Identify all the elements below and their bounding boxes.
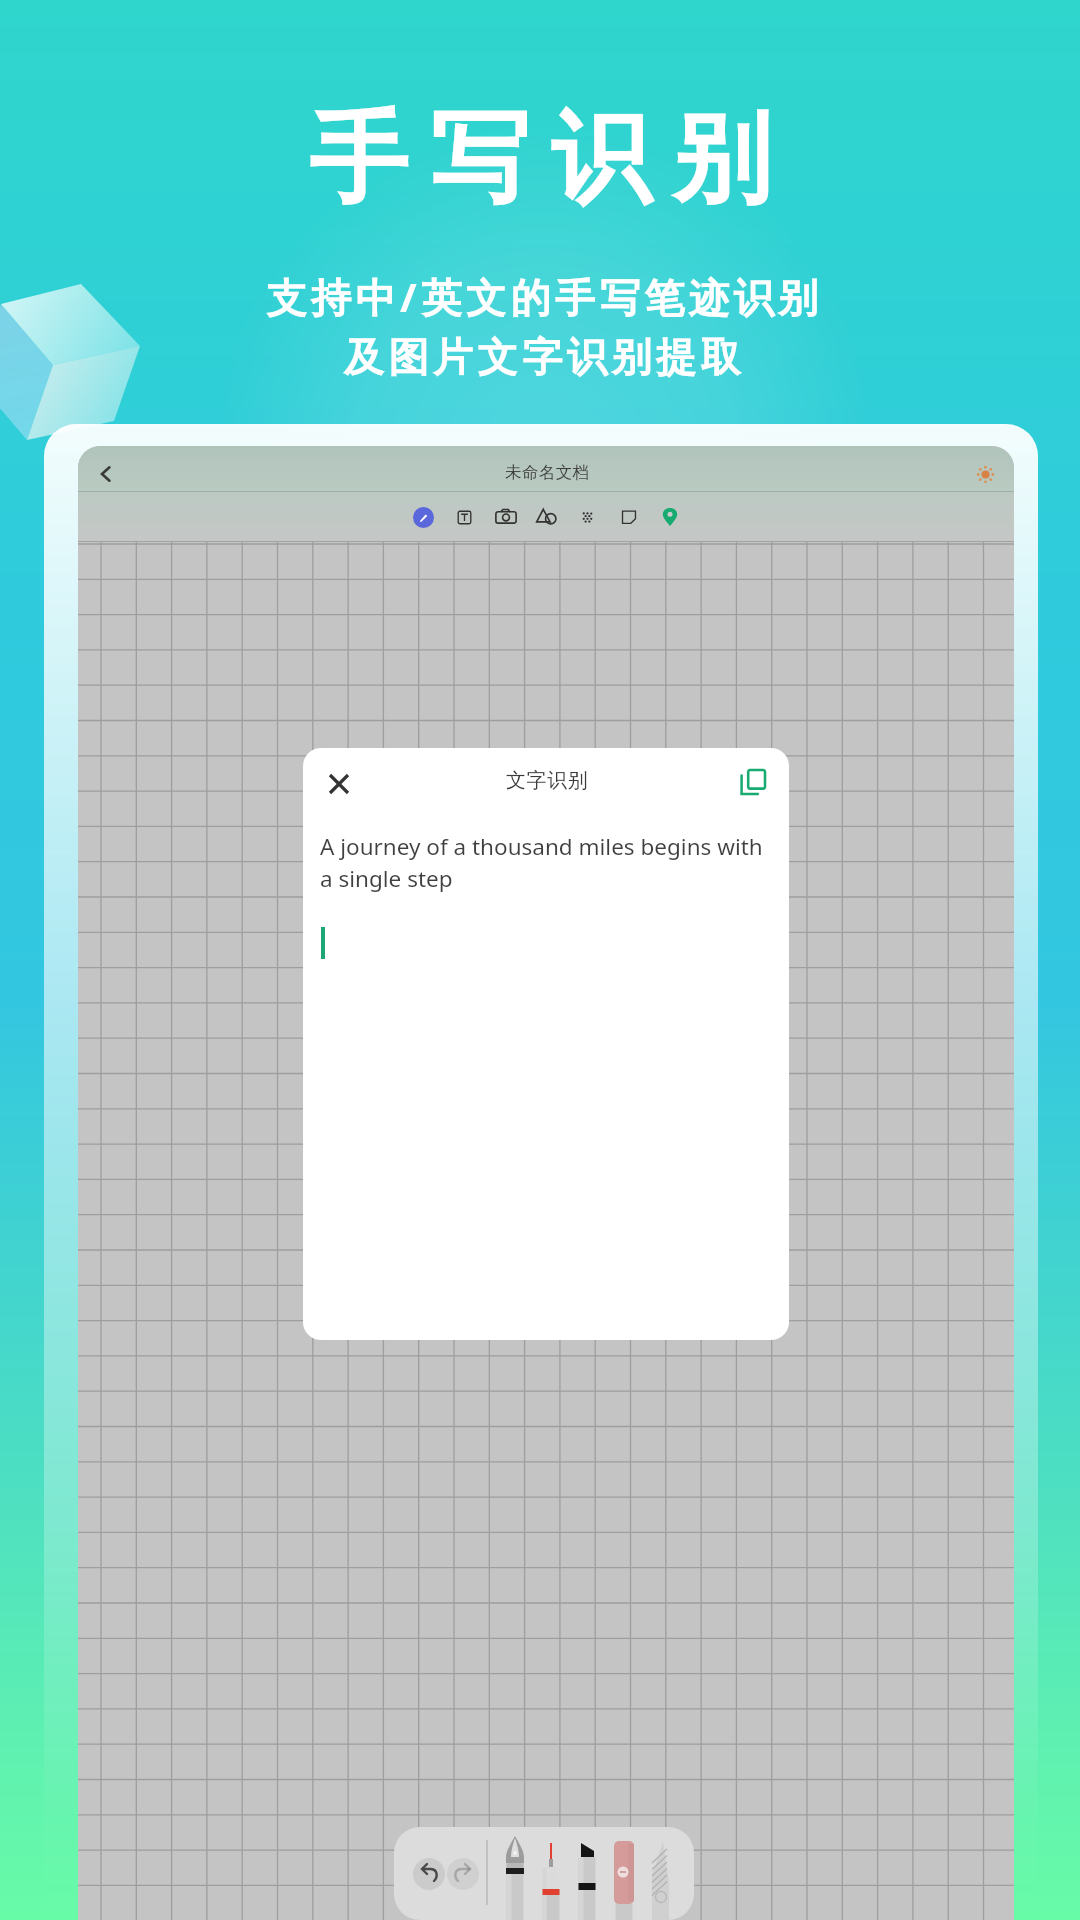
button[interactable]: Copy <box>733 764 773 804</box>
staticText: 未命名文档 <box>505 462 590 483</box>
button[interactable]: Close <box>317 762 361 806</box>
button[interactable]: Back <box>87 451 123 487</box>
button[interactable]: Note <box>608 495 649 539</box>
button[interactable]: Brush pen <box>641 1827 677 1920</box>
button[interactable]: Shapes <box>526 495 567 539</box>
button[interactable]: Fountain pen <box>497 1827 533 1920</box>
button[interactable]: Marker <box>569 1827 605 1920</box>
button[interactable]: Highlighter <box>605 1827 641 1920</box>
button[interactable]: Fine liner <box>533 1827 569 1920</box>
button[interactable]: Location <box>649 495 690 539</box>
button[interactable]: Undo <box>413 1858 445 1890</box>
staticText: A journey of a thousand miles begins wit… <box>320 831 775 894</box>
button[interactable]: Pen <box>403 495 444 539</box>
staticText: 文字识别 <box>506 768 589 793</box>
staticText: 手写识别 <box>298 97 782 222</box>
button[interactable]: Redo <box>447 1858 479 1890</box>
button[interactable]: Eraser <box>567 495 608 539</box>
staticText: 支持中/英文的手写笔迹识别 及图片文字识别提取 <box>266 269 823 383</box>
button[interactable]: Text <box>444 495 485 539</box>
button[interactable]: Brightness <box>966 451 1002 487</box>
button[interactable]: Camera <box>485 495 526 539</box>
